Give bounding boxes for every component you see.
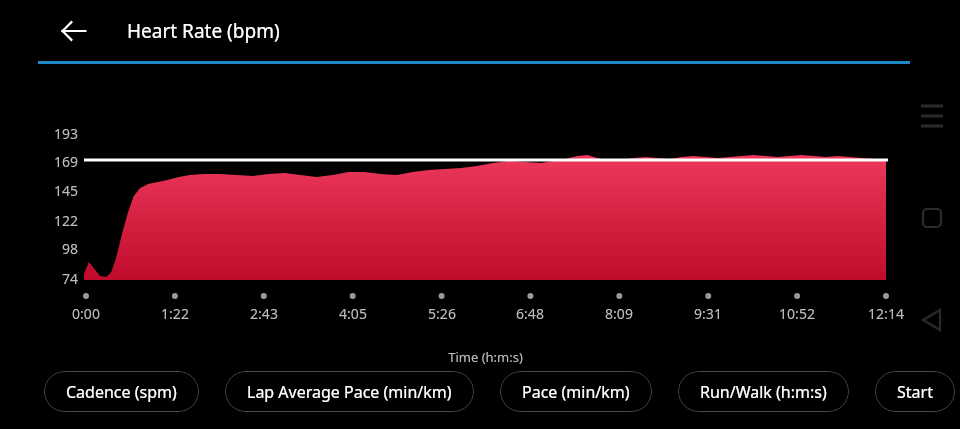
staticText: Pace (min/km) xyxy=(522,381,630,403)
staticText: 98 xyxy=(61,239,78,258)
staticText: 10:52 xyxy=(779,304,815,323)
staticText: 6:48 xyxy=(516,304,544,323)
button[interactable]: Lap Average Pace (min/km) xyxy=(225,371,474,412)
staticText: 8:09 xyxy=(605,304,633,323)
staticText: Start xyxy=(897,381,933,403)
staticText: 74 xyxy=(61,269,78,288)
staticText: 9:31 xyxy=(694,304,722,323)
staticText: 5:26 xyxy=(428,304,456,323)
staticText: 2:43 xyxy=(250,304,278,323)
button[interactable]: Back xyxy=(52,9,96,53)
staticText: Lap Average Pace (min/km) xyxy=(247,381,452,403)
button[interactable]: Back xyxy=(908,296,956,344)
button[interactable]: Home xyxy=(908,194,956,242)
staticText: 12:14 xyxy=(868,304,904,323)
button[interactable]: Start xyxy=(875,371,955,412)
button[interactable]: Cadence (spm) xyxy=(44,371,199,412)
button[interactable]: Pace (min/km) xyxy=(500,371,652,412)
staticText: 0:00 xyxy=(72,304,100,323)
staticText: Run/Walk (h:m:s) xyxy=(700,381,827,403)
staticText: 169 xyxy=(53,152,78,171)
staticText: 4:05 xyxy=(339,304,367,323)
button[interactable]: Recents xyxy=(908,92,956,140)
staticText: 193 xyxy=(53,124,78,143)
staticText: Time (h:m:s) xyxy=(448,348,523,366)
staticText: 1:22 xyxy=(161,304,189,323)
staticText: Heart Rate (bpm) xyxy=(127,18,280,44)
staticText: 122 xyxy=(53,211,78,230)
staticText: Cadence (spm) xyxy=(66,381,177,403)
staticText: 145 xyxy=(53,181,78,200)
button[interactable]: Run/Walk (h:m:s) xyxy=(678,371,849,412)
